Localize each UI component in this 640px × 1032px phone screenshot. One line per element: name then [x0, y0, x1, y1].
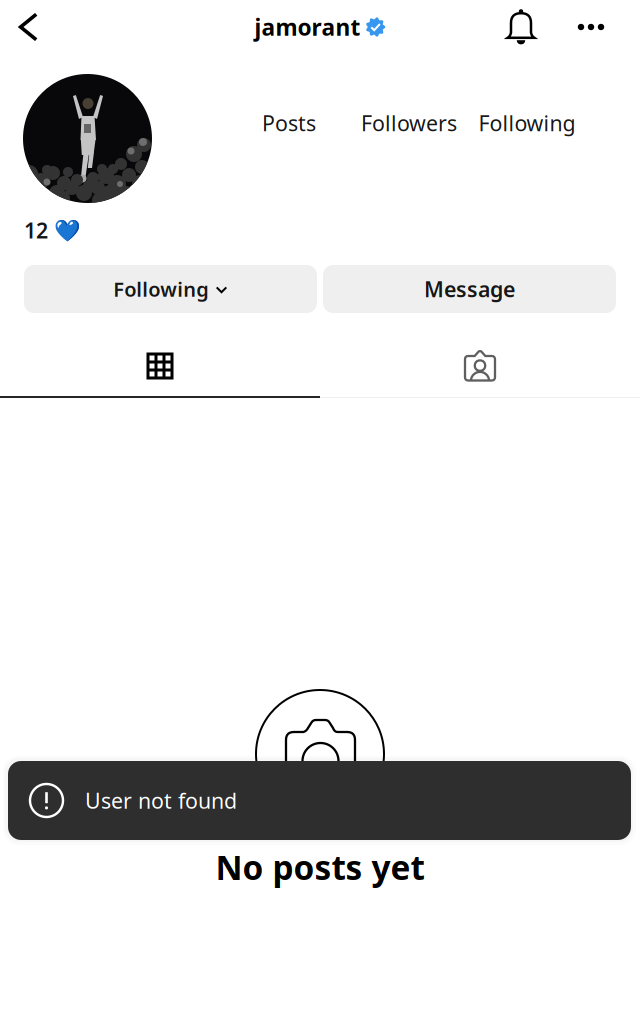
- button[interactable]: Back: [0, 0, 52, 54]
- staticText: jamorant: [254, 12, 360, 42]
- button[interactable]: Following: [472, 105, 582, 141]
- button[interactable]: Posts: [234, 105, 344, 141]
- button[interactable]: Message: [323, 265, 616, 313]
- staticText: Message: [424, 275, 515, 303]
- staticText: Following: [113, 276, 209, 302]
- button[interactable]: Following: [24, 265, 317, 313]
- staticText: Following: [478, 109, 575, 137]
- button[interactable]: Followers: [354, 105, 464, 141]
- staticText: User not found: [85, 786, 237, 815]
- staticText: Posts: [262, 109, 316, 137]
- button[interactable]: More options: [559, 0, 623, 54]
- staticText: No posts yet: [215, 845, 424, 889]
- button[interactable]: Notifications: [483, 0, 559, 54]
- staticText: 12 💙: [24, 216, 81, 244]
- button[interactable]: Posts grid: [0, 342, 320, 390]
- staticText: Followers: [361, 109, 457, 137]
- button[interactable]: Tagged posts: [320, 342, 640, 390]
